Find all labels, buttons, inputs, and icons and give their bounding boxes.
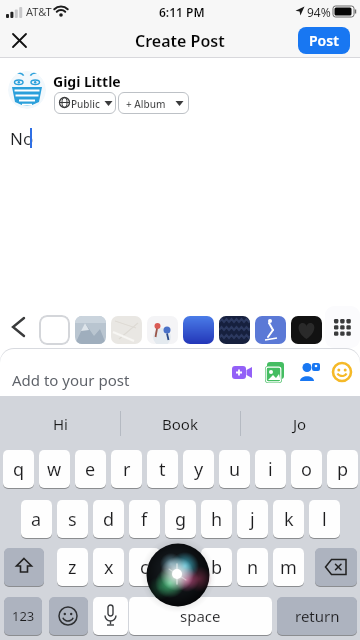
button[interactable]: n — [237, 548, 268, 587]
button[interactable]: s — [57, 500, 88, 539]
button[interactable]: m — [273, 548, 304, 587]
button[interactable] — [39, 315, 70, 345]
staticText: j — [250, 507, 255, 532]
button[interactable]: b — [201, 548, 232, 587]
button[interactable]: p — [327, 450, 358, 489]
button[interactable] — [325, 306, 360, 348]
staticText: g — [175, 507, 187, 532]
staticText: c — [140, 555, 149, 580]
button[interactable]: l — [309, 500, 340, 539]
staticText: Add to your post — [12, 370, 130, 390]
staticText: return — [295, 606, 340, 626]
staticText: 123 — [12, 607, 35, 625]
staticText: i — [268, 457, 273, 482]
button[interactable]: r — [111, 450, 142, 489]
button[interactable] — [183, 316, 214, 344]
staticText: No — [10, 127, 34, 150]
staticText: q — [13, 457, 25, 482]
button[interactable]: Jo — [240, 406, 360, 442]
button[interactable]: g — [165, 500, 196, 539]
button[interactable]: k — [273, 500, 304, 539]
button[interactable]: f — [129, 500, 160, 539]
staticText: w — [47, 457, 62, 482]
staticText: o — [301, 457, 312, 482]
button[interactable]: t — [147, 450, 178, 489]
staticText: z — [68, 555, 77, 580]
staticText: Public — [71, 97, 100, 111]
button[interactable] — [9, 316, 29, 338]
button[interactable] — [327, 316, 358, 344]
button[interactable]: v — [165, 548, 196, 587]
button[interactable]: d — [93, 500, 124, 539]
staticText: n — [247, 555, 259, 580]
staticText: 6:11 PM — [159, 4, 205, 20]
button[interactable] — [291, 316, 322, 344]
button[interactable]: q — [3, 450, 34, 489]
staticText: d — [103, 507, 115, 532]
staticText: s — [68, 507, 77, 532]
button[interactable] — [219, 316, 250, 344]
button[interactable] — [147, 316, 178, 344]
button[interactable] — [4, 548, 44, 587]
button[interactable] — [8, 29, 31, 52]
button[interactable] — [49, 597, 88, 636]
button[interactable]: u — [219, 450, 250, 489]
button[interactable]: i — [255, 450, 286, 489]
button[interactable]: return — [277, 597, 357, 636]
button[interactable]: + Album — [118, 92, 189, 114]
button[interactable]: Book — [120, 406, 240, 442]
button[interactable]: Public — [54, 92, 116, 114]
staticText: Post — [309, 31, 339, 50]
button[interactable]: Post — [298, 27, 350, 54]
button[interactable] — [93, 597, 128, 636]
button[interactable]: x — [93, 548, 124, 587]
staticText: Jo — [293, 414, 307, 434]
button[interactable]: h — [201, 500, 232, 539]
button[interactable]: c — [129, 548, 160, 587]
button[interactable] — [75, 316, 106, 344]
staticText: l — [322, 507, 327, 532]
button[interactable]: space — [129, 597, 272, 636]
staticText: AT&T — [26, 4, 52, 19]
button[interactable] — [111, 316, 142, 344]
button[interactable]: 123 — [4, 597, 42, 636]
button[interactable]: w — [39, 450, 70, 489]
staticText: b — [211, 555, 223, 580]
staticText: e — [85, 457, 96, 482]
staticText: 94% — [307, 4, 331, 20]
staticText: Hi — [53, 414, 68, 434]
staticText: Create Post — [135, 30, 225, 52]
staticText: Gigi Little — [53, 72, 121, 91]
staticText: p — [337, 457, 349, 482]
staticText: f — [141, 507, 148, 532]
staticText: x — [104, 555, 114, 580]
button[interactable]: a — [21, 500, 52, 539]
staticText: m — [280, 555, 297, 580]
button[interactable] — [315, 548, 357, 587]
button[interactable]: Add to your post — [0, 349, 360, 396]
staticText: space — [180, 606, 221, 626]
button[interactable]: o — [291, 450, 322, 489]
staticText: y — [194, 457, 204, 482]
staticText: h — [211, 507, 223, 532]
staticText: + Album — [126, 97, 166, 111]
staticText: Book — [162, 414, 198, 434]
staticText: u — [229, 457, 241, 482]
button[interactable]: j — [237, 500, 268, 539]
button[interactable] — [255, 316, 286, 344]
button[interactable]: Hi — [0, 406, 120, 442]
button[interactable]: y — [183, 450, 214, 489]
staticText: a — [31, 507, 42, 532]
staticText: k — [284, 507, 294, 532]
staticText: t — [159, 457, 166, 482]
staticText: r — [123, 457, 131, 482]
staticText: v — [176, 555, 186, 580]
button[interactable]: z — [57, 548, 88, 587]
button[interactable]: e — [75, 450, 106, 489]
